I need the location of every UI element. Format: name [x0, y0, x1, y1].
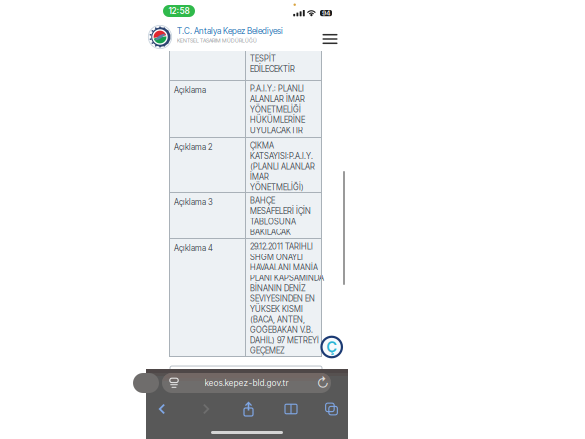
staticText: SHGM ONAYLI [250, 252, 303, 262]
staticText: PLANI KAPSAMINDA [250, 273, 324, 283]
staticText: ALANLAR İMAR [250, 94, 305, 104]
staticText: T.C. Antalya Kepez Belediyesi [177, 26, 283, 36]
button[interactable]: Page settings [164, 373, 184, 393]
button[interactable]: Share [239, 400, 257, 418]
staticText: YÖNETMELİĞİ [250, 105, 301, 114]
staticText: 29.12.2011 TARİHLİ [250, 242, 313, 252]
staticText: EDİLECEKTİR [250, 64, 295, 74]
button[interactable]: Refresh [321, 336, 343, 358]
button[interactable]: Reload [313, 373, 333, 393]
button[interactable]: Bookmarks [282, 400, 300, 418]
staticText: ÇIKMA [250, 141, 274, 151]
staticText: TABLOSUNA [250, 217, 296, 226]
staticText: DAHİL) 97 METREYİ [250, 335, 319, 345]
button[interactable]: keos.kepez-bld.gov.tr [162, 373, 331, 393]
staticText: BAKILACAK [250, 227, 291, 237]
staticText: KATSAYISI:P.A.İ.Y. [250, 151, 313, 161]
staticText: GEÇEMEZ [250, 346, 285, 356]
staticText: UYULACAKTIR [250, 125, 303, 135]
staticText: Açıklama 2 [174, 142, 212, 152]
staticText: TESPİT [250, 54, 276, 64]
staticText: YÜKSEK KISMI [250, 304, 303, 314]
staticText: 94 [322, 9, 330, 17]
staticText: HAVAALANI MANİA [250, 263, 318, 272]
staticText: ↻ [316, 375, 329, 391]
staticText: BİNANIN DENİZ [250, 283, 306, 293]
staticText: (PLANLI ALANLAR [250, 162, 315, 171]
staticText: P.A.İ.Y.: PLANLI [250, 84, 304, 94]
staticText: GÖĞEBAKAN V.B. [250, 325, 313, 335]
staticText: Açıklama 3 [174, 197, 213, 207]
button[interactable]: Back [152, 400, 170, 418]
staticText: 12:58 [168, 6, 189, 16]
staticText: HÜKÜMLERİNE [250, 115, 305, 125]
button[interactable]: Menu [318, 27, 342, 51]
staticText: BAHÇE [250, 196, 275, 206]
staticText: (BACA, ANTEN, [250, 315, 305, 324]
button[interactable]: Tabs [322, 400, 340, 418]
staticText: KENTSEL TASARIM MÜDÜRLÜĞÜ [177, 37, 257, 44]
staticText: MESAFELERİ İÇİN [250, 206, 311, 216]
staticText: Açıklama 4 [174, 243, 213, 253]
staticText: Ç [326, 338, 337, 356]
staticText: keos.kepez-bld.gov.tr [204, 378, 288, 388]
staticText: YÖNETMELİĞİ) [250, 182, 304, 192]
staticText: İMAR [250, 172, 269, 182]
staticText: SEVİYESİNDEN EN [250, 294, 315, 304]
button[interactable]: Forward [197, 400, 215, 418]
staticText: Açıklama [174, 85, 206, 95]
